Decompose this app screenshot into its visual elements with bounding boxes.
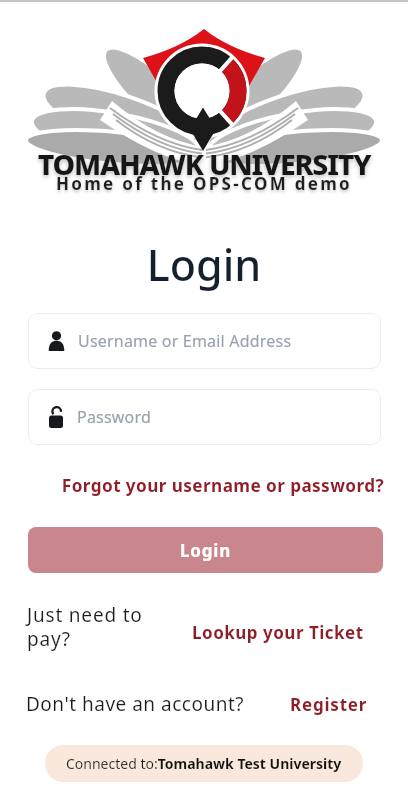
staticText: Connected to:Tomahawk Test University [66, 754, 342, 773]
button[interactable]: Lookup your Ticket [192, 621, 364, 644]
staticText: Home of the OPS-COM demo [0, 172, 408, 195]
button[interactable]: Username or Email Address [28, 313, 381, 369]
staticText: Username or Email Address [78, 330, 292, 352]
staticText: Just need to pay? [27, 602, 143, 651]
button[interactable]: Password [28, 389, 381, 445]
button[interactable]: Forgot your username or password? [0, 474, 384, 497]
staticText: TOMAHAWK UNIVERSITY [0, 145, 408, 184]
staticText: Password [77, 406, 151, 428]
button[interactable]: Login [28, 527, 383, 573]
button[interactable]: Register [290, 693, 368, 716]
staticText: Login [0, 235, 408, 294]
staticText: Login [180, 539, 232, 562]
staticText: Don't have an account? [26, 691, 245, 717]
